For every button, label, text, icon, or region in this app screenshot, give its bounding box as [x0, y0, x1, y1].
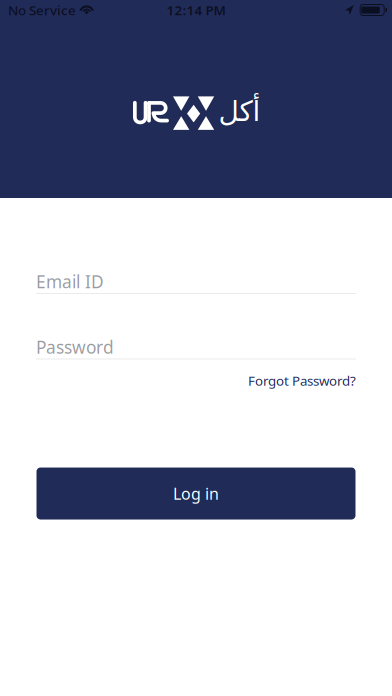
- staticText: Log in: [173, 483, 219, 504]
- staticText: 12:14 PM: [166, 1, 225, 19]
- staticText: Email ID: [36, 270, 104, 293]
- staticText: Forgot Password?: [248, 372, 356, 389]
- staticText: Password: [36, 335, 114, 358]
- staticText: أكل: [218, 95, 260, 127]
- staticText: No Service: [8, 1, 76, 19]
- button[interactable]: Log in: [36, 467, 355, 519]
- button[interactable]: Forgot Password?: [248, 372, 356, 388]
